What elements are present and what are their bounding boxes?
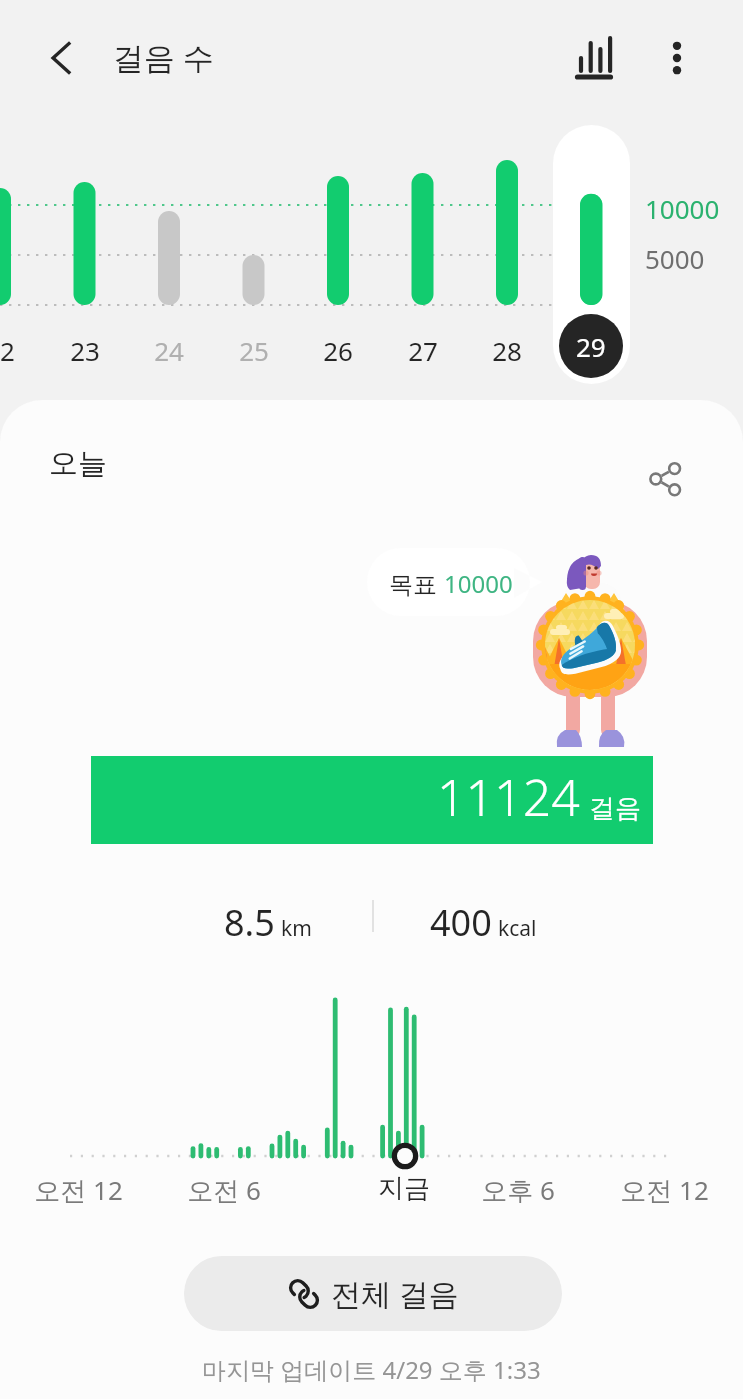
staticText: 27 <box>408 333 438 368</box>
staticText: 24 <box>154 333 184 368</box>
staticText: 25 <box>239 333 269 368</box>
button[interactable]: Back <box>33 30 89 86</box>
staticText: 전체 걸음 <box>331 1273 459 1314</box>
staticText: 10000 <box>645 191 720 226</box>
staticText: 걸음 수 <box>113 36 215 78</box>
staticText: 26 <box>323 333 353 368</box>
button[interactable]: Chart <box>570 30 626 86</box>
staticText: 29 <box>577 333 607 368</box>
staticText: 오전 12 <box>34 1172 123 1208</box>
button[interactable] <box>553 125 630 384</box>
staticText: 23 <box>70 333 100 368</box>
staticText: 11124 <box>437 763 580 831</box>
staticText: 29 <box>576 329 606 364</box>
staticText: 22 <box>0 333 15 368</box>
staticText: 지금 <box>378 1172 430 1205</box>
button[interactable]: 전체 걸음 <box>184 1256 562 1331</box>
staticText: kcal <box>498 914 537 943</box>
staticText: 28 <box>492 333 522 368</box>
staticText: 5000 <box>645 241 705 276</box>
staticText: 10000 <box>444 567 513 600</box>
staticText: 400 <box>430 898 492 947</box>
staticText: km <box>281 914 312 943</box>
button[interactable]: More options <box>649 30 705 86</box>
staticText: 오후 6 <box>481 1172 555 1208</box>
button[interactable]: Share <box>632 446 698 512</box>
staticText: 오전 6 <box>187 1172 261 1208</box>
staticText: 8.5 <box>224 898 275 947</box>
staticText: 걸음 <box>589 792 641 825</box>
button[interactable]: 11124 <box>91 756 653 844</box>
staticText: 마지막 업데이트 4/29 오후 1:33 <box>202 1353 541 1386</box>
staticText: 목표 <box>389 567 444 600</box>
staticText: 오전 12 <box>620 1172 709 1208</box>
staticText: 오늘 <box>49 445 107 482</box>
